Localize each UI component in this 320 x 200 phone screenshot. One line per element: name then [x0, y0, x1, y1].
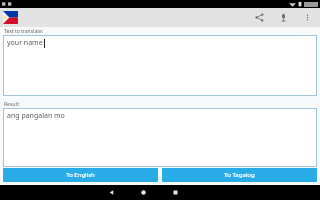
staticText: Result: [4, 101, 20, 108]
button[interactable]: Home [132, 185, 154, 200]
button[interactable]: Share [251, 9, 268, 26]
button[interactable]: Speak [275, 9, 292, 26]
button[interactable]: To Tagalog [162, 168, 317, 182]
button[interactable]: To English [3, 168, 158, 182]
staticText: To English [66, 171, 95, 179]
button[interactable]: Recent apps [164, 185, 186, 200]
staticText: To Tagalog [224, 171, 255, 179]
button[interactable]: App icon [3, 11, 18, 24]
button[interactable]: Back [100, 185, 122, 200]
button[interactable]: More options [299, 9, 316, 26]
staticText: Text to translate: [4, 28, 44, 35]
staticText: ang pangalan mo [7, 111, 65, 121]
button[interactable]: ang pangalan mo [3, 108, 317, 167]
staticText: your name [7, 38, 43, 48]
button[interactable]: your name [3, 35, 317, 96]
